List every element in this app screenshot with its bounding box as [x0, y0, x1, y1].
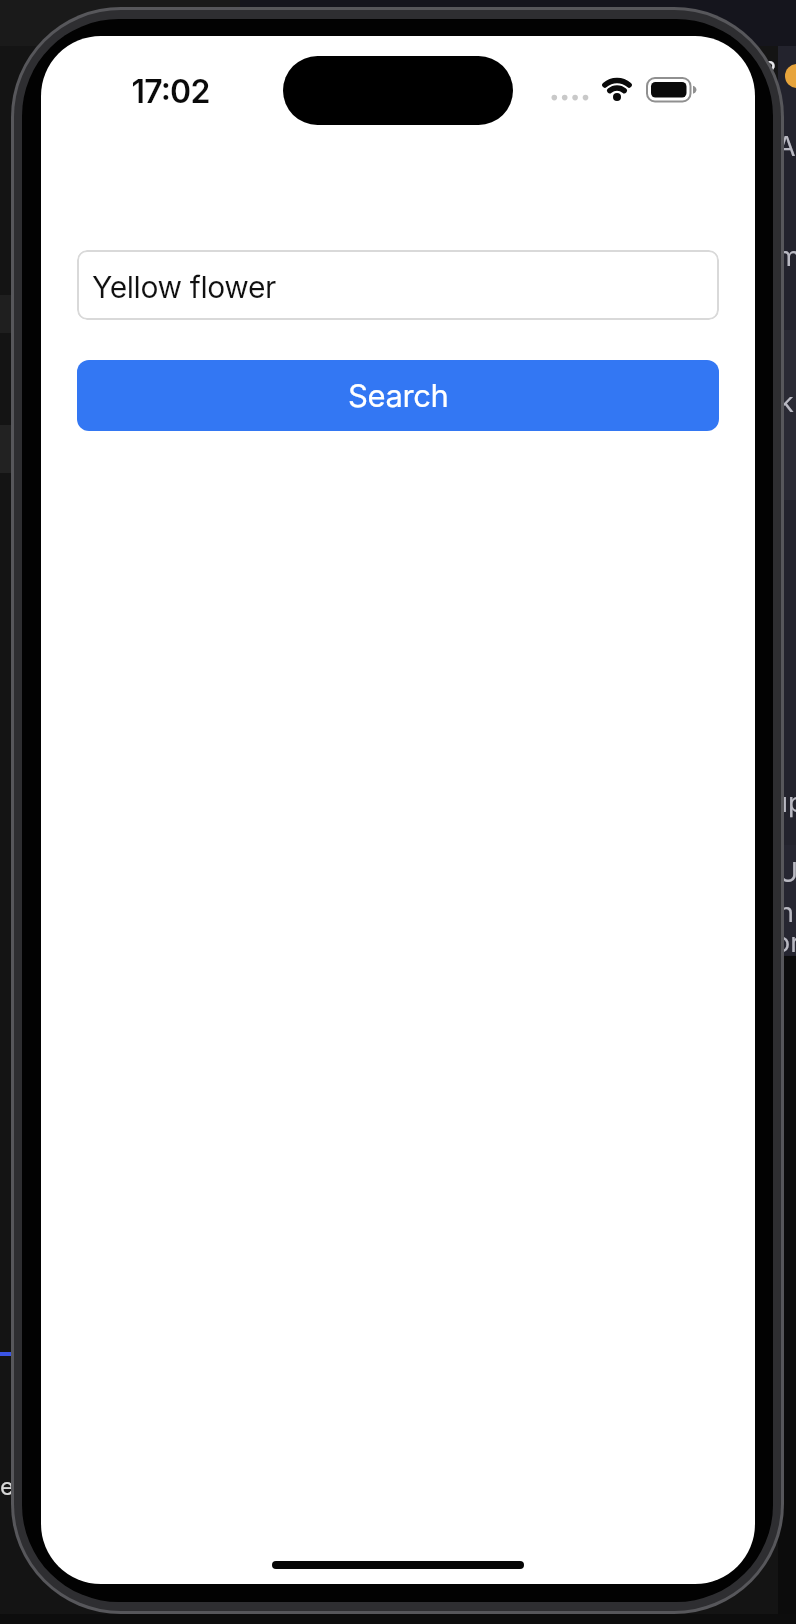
- staticText: Search: [348, 377, 449, 415]
- staticText: k: [779, 386, 794, 419]
- staticText: A: [777, 130, 796, 163]
- staticText: e(: [0, 1472, 23, 1501]
- staticText: ?: [763, 56, 776, 86]
- staticText: U: [778, 856, 796, 889]
- staticText: 17:02: [131, 72, 210, 111]
- staticText: m: [777, 240, 796, 273]
- staticText: Yellow flower: [92, 269, 276, 305]
- staticText: or: [774, 926, 796, 959]
- staticText: up: [772, 786, 796, 819]
- button[interactable]: Yellow flower: [77, 250, 719, 320]
- button[interactable]: Search: [77, 360, 719, 431]
- staticText: n: [778, 896, 794, 929]
